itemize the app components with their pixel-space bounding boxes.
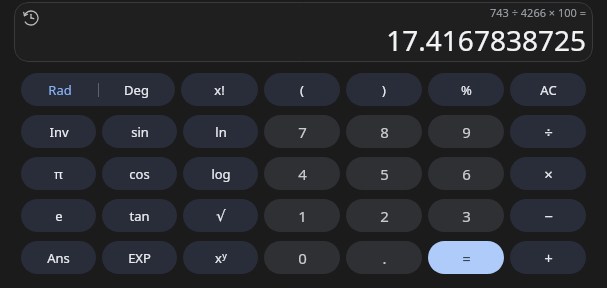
button[interactable]: 8 (346, 115, 422, 148)
staticText: log (211, 165, 231, 183)
button[interactable]: + (510, 241, 586, 274)
button[interactable]: x! (181, 73, 258, 106)
button[interactable]: π (21, 157, 96, 190)
button[interactable]: x (183, 241, 258, 274)
staticText: EXP (128, 249, 151, 267)
staticText: 5 (380, 164, 389, 184)
staticText: 7 (298, 122, 307, 142)
button[interactable]: Deg (98, 73, 175, 106)
button[interactable]: . (346, 241, 422, 274)
staticText: AC (540, 81, 557, 99)
staticText: sin (131, 123, 149, 141)
staticText: √ (216, 207, 226, 224)
staticText: ÷ (544, 122, 553, 142)
button[interactable]: = (428, 241, 504, 274)
staticText: + (544, 248, 553, 268)
button[interactable]: 5 (346, 157, 422, 190)
button[interactable]: % (428, 73, 504, 106)
staticText: 9 (462, 122, 471, 142)
button[interactable]: 7 (264, 115, 340, 148)
button[interactable]: sin (102, 115, 177, 148)
button[interactable]: 0 (264, 241, 340, 274)
button[interactable]: EXP (102, 241, 177, 274)
staticText: % (461, 81, 472, 99)
staticText: 0 (298, 248, 307, 268)
button[interactable]: 2 (346, 199, 422, 232)
staticText: ln (215, 123, 227, 141)
button[interactable]: ln (183, 115, 258, 148)
staticText: ( (300, 81, 304, 99)
button[interactable]: Inv (21, 115, 96, 148)
button[interactable]: cos (102, 157, 177, 190)
staticText: Inv (49, 123, 69, 141)
button[interactable]: × (510, 157, 586, 190)
staticText: 743 ÷ 4266 × 100 = (489, 5, 586, 20)
staticText: cos (129, 165, 150, 183)
staticText: 2 (380, 206, 389, 226)
button[interactable]: √ (183, 199, 258, 232)
staticText: − (544, 206, 553, 226)
staticText: ) (382, 81, 386, 99)
staticText: . (382, 248, 387, 268)
staticText: = (462, 248, 471, 268)
button[interactable]: AC (510, 73, 586, 106)
button[interactable]: 1 (264, 199, 340, 232)
button[interactable]: 6 (428, 157, 504, 190)
button[interactable]: 4 (264, 157, 340, 190)
staticText: Ans (47, 249, 70, 267)
button[interactable]: ÷ (510, 115, 586, 148)
staticText: Rad (48, 81, 72, 99)
button[interactable]: e (21, 199, 96, 232)
staticText: 4 (298, 164, 307, 184)
button[interactable]: log (183, 157, 258, 190)
staticText: x! (214, 81, 225, 99)
button[interactable]: ) (346, 73, 422, 106)
button[interactable]: Ans (21, 241, 96, 274)
staticText: 8 (380, 122, 389, 142)
staticText: π (54, 165, 63, 183)
staticText: 17.4167838725 (386, 21, 586, 59)
staticText: 1 (298, 206, 307, 226)
button[interactable]: 9 (428, 115, 504, 148)
button[interactable]: tan (102, 199, 177, 232)
staticText: Deg (124, 81, 149, 99)
button[interactable]: History (20, 7, 42, 29)
staticText: x (215, 249, 222, 267)
button[interactable]: − (510, 199, 586, 232)
button[interactable]: ( (264, 73, 340, 106)
staticText: tan (129, 207, 150, 225)
staticText: 6 (462, 164, 471, 184)
button[interactable]: 3 (428, 199, 504, 232)
staticText: e (55, 207, 63, 225)
button[interactable]: Rad (21, 73, 98, 106)
staticText: 3 (462, 206, 471, 226)
staticText: y (222, 249, 227, 261)
staticText: × (544, 164, 553, 184)
